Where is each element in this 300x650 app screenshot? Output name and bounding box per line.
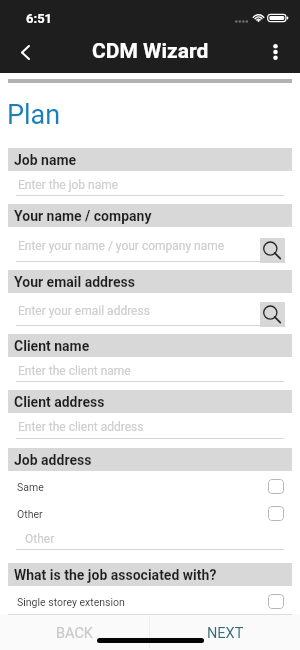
button[interactable]: BACK <box>0 614 149 650</box>
staticText: Client address <box>14 394 105 410</box>
staticText: BACK <box>56 625 93 642</box>
staticText: Same <box>17 481 44 493</box>
button[interactable]: Back <box>0 28 46 73</box>
staticText: NEXT <box>207 625 244 642</box>
button[interactable]: Search <box>260 302 285 327</box>
staticText: What is the job associated with? <box>14 567 217 583</box>
button[interactable]: Enter the client address <box>0 413 300 439</box>
staticText: Your name / company <box>14 208 152 224</box>
button[interactable]: Enter the client name <box>0 357 300 382</box>
staticText: Other <box>17 508 43 520</box>
button[interactable]: Enter the job name <box>0 171 300 196</box>
staticText: Enter the client address <box>18 420 144 434</box>
button[interactable]: NEXT <box>150 614 300 650</box>
staticText: Plan <box>7 99 61 131</box>
staticText: Enter your name / your company name <box>18 239 225 253</box>
staticText: Single storey extension <box>17 596 125 608</box>
staticText: Enter the client name <box>18 364 131 378</box>
button[interactable]: Other <box>0 502 300 525</box>
button[interactable]: Search <box>260 238 285 263</box>
staticText: Enter the job name <box>18 178 119 192</box>
button[interactable]: Enter your name / your company name <box>0 227 300 262</box>
staticText: CDM Wizard <box>92 39 209 64</box>
button[interactable]: Single storey extension <box>0 590 300 613</box>
button[interactable]: Same <box>0 475 300 498</box>
staticText: Job name <box>14 152 77 168</box>
button[interactable]: Other <box>0 525 300 550</box>
staticText: Your email address <box>14 274 135 290</box>
staticText: 6:51 <box>26 11 53 26</box>
button[interactable]: Enter your email address <box>0 293 300 326</box>
staticText: Job address <box>14 452 92 468</box>
staticText: Client name <box>14 338 90 354</box>
button[interactable]: More options <box>258 28 292 73</box>
staticText: Other <box>25 532 55 546</box>
staticText: Enter your email address <box>18 304 150 318</box>
